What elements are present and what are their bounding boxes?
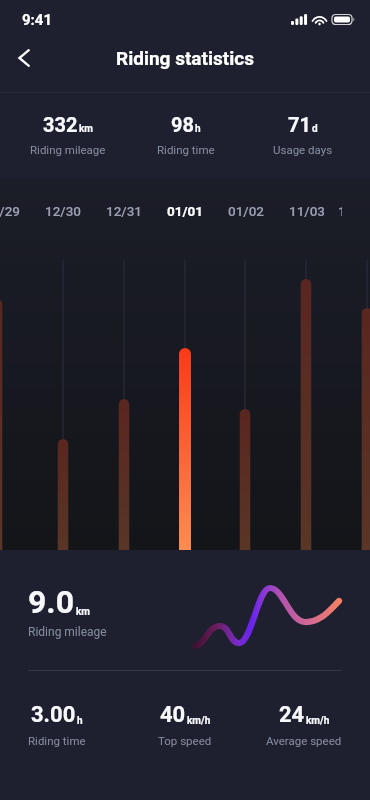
staticText: Riding time	[157, 143, 215, 156]
staticText: 98	[171, 113, 194, 136]
button[interactable]: Back	[0, 34, 48, 82]
button[interactable]: 01/02	[216, 203, 277, 229]
staticText: 01/02	[228, 203, 265, 219]
staticText: d	[312, 123, 318, 135]
staticText: Top speed	[158, 734, 212, 747]
staticText: Average speed	[266, 734, 342, 747]
staticText: 11/03	[289, 203, 326, 219]
staticText: 24	[279, 702, 305, 728]
staticText: km/h	[306, 715, 330, 727]
button[interactable]: 12/30	[33, 203, 94, 229]
staticText: 40	[160, 702, 186, 728]
staticText: km	[76, 606, 90, 618]
staticText: km	[79, 123, 93, 135]
staticText: Riding time	[28, 734, 86, 747]
staticText: 11/04	[338, 203, 342, 219]
staticText: 332	[43, 113, 78, 136]
staticText: 01/01	[167, 203, 204, 219]
staticText: h	[195, 123, 201, 135]
staticText: 12/31	[106, 203, 143, 219]
button[interactable]: 12/31	[94, 203, 155, 229]
staticText: Riding mileage	[30, 143, 106, 156]
staticText: Usage days	[273, 143, 333, 156]
staticText: 12/30	[45, 203, 82, 219]
staticText: Riding mileage	[28, 625, 107, 639]
staticText: h	[77, 715, 83, 727]
button[interactable]: 11/03	[277, 203, 338, 229]
button[interactable]: 11/04	[338, 203, 342, 229]
staticText: Riding statistics	[116, 47, 254, 69]
button[interactable]: 01/01	[155, 203, 216, 229]
staticText: 71	[288, 113, 311, 136]
staticText: 9:41	[22, 11, 53, 29]
staticText: km/h	[187, 715, 211, 727]
staticText: 3.00	[31, 702, 76, 728]
staticText: 12/29	[0, 203, 21, 219]
button[interactable]: 12/29	[0, 203, 33, 229]
staticText: 9.0	[28, 583, 75, 621]
